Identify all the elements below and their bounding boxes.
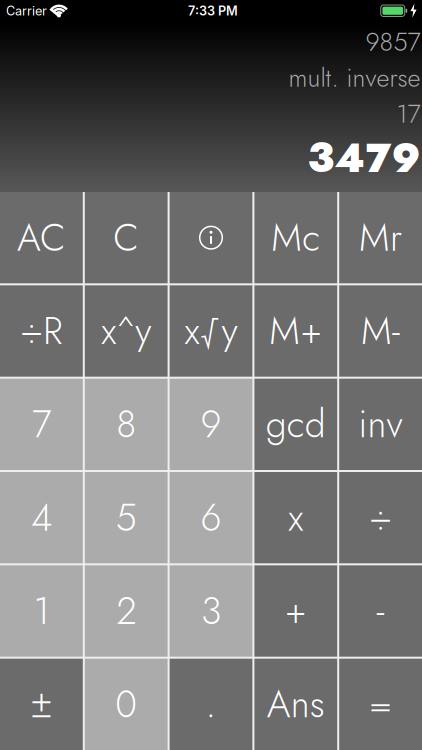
staticText: M- (361, 305, 400, 357)
staticText: 0 (115, 678, 137, 731)
staticText: x^y (101, 305, 151, 357)
button[interactable]: Mr (339, 192, 422, 283)
button[interactable]: ÷R (0, 285, 83, 377)
button[interactable]: ÷ (339, 472, 422, 563)
button[interactable]: 7 (0, 379, 83, 470)
staticText: 17 (396, 96, 420, 132)
button[interactable]: ± (0, 659, 83, 750)
staticText: 7:33 PM (188, 3, 238, 19)
button[interactable]: M+ (254, 285, 337, 377)
staticText: x√y (184, 305, 237, 357)
staticText: 9857 (365, 24, 420, 60)
staticText: ÷ (369, 491, 392, 544)
staticText: x (288, 491, 303, 544)
button[interactable]: inv (339, 379, 422, 470)
button[interactable]: x√y (170, 285, 252, 377)
button[interactable]: Mc (254, 192, 337, 283)
staticText: 8 (116, 398, 136, 451)
staticText: ÷R (20, 305, 63, 357)
button[interactable]: = (339, 659, 422, 750)
button[interactable]: 8 (85, 379, 168, 470)
staticText: AC (17, 211, 66, 264)
staticText: gcd (266, 398, 326, 451)
button[interactable]: Info (170, 192, 252, 283)
button[interactable]: AC (0, 192, 83, 283)
button[interactable]: 3 (170, 565, 252, 657)
staticText: + (285, 585, 307, 637)
button[interactable]: 5 (85, 472, 168, 563)
staticText: 1 (33, 585, 49, 637)
button[interactable]: M- (339, 285, 422, 377)
staticText: ± (30, 678, 53, 731)
staticText: - (377, 585, 385, 637)
staticText: mult. inverse (288, 60, 420, 96)
staticText: 3 (201, 585, 221, 637)
button[interactable]: Ans (254, 659, 337, 750)
button[interactable]: gcd (254, 379, 337, 470)
button[interactable]: - (339, 565, 422, 657)
staticText: Mr (359, 211, 402, 264)
button[interactable]: x^y (85, 285, 168, 377)
staticText: Ans (267, 678, 325, 731)
staticText: 4 (31, 491, 52, 544)
button[interactable]: C (85, 192, 168, 283)
button[interactable]: 6 (170, 472, 252, 563)
button[interactable]: 2 (85, 565, 168, 657)
staticText: Mc (271, 211, 320, 264)
staticText: 2 (116, 585, 136, 637)
button[interactable]: 9 (170, 379, 252, 470)
staticText: 6 (200, 491, 221, 544)
staticText: 9 (200, 398, 221, 451)
staticText: . (205, 678, 216, 731)
button[interactable]: 4 (0, 472, 83, 563)
staticText: = (369, 678, 392, 731)
button[interactable]: . (170, 659, 252, 750)
staticText: 5 (116, 491, 137, 544)
staticText: inv (359, 398, 403, 451)
button[interactable]: 0 (85, 659, 168, 750)
button[interactable]: + (254, 565, 337, 657)
staticText: 3479 (307, 130, 420, 186)
button[interactable]: 1 (0, 565, 83, 657)
staticText: Carrier (6, 3, 47, 19)
staticText: 7 (32, 398, 51, 451)
staticText: C (113, 211, 139, 264)
button[interactable]: x (254, 472, 337, 563)
staticText: M+ (269, 305, 322, 357)
